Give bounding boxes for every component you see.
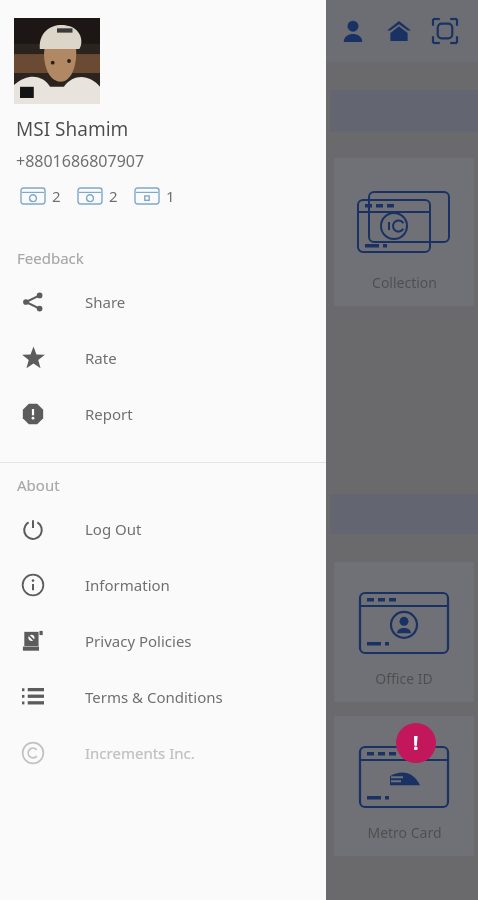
- button[interactable]: Increments Inc.: [0, 725, 326, 781]
- staticText: 2: [109, 186, 118, 206]
- button[interactable]: Collection: [334, 158, 474, 306]
- staticText: Increments Inc.: [85, 743, 195, 763]
- staticText: Information: [85, 575, 170, 595]
- staticText: Report: [85, 404, 133, 424]
- staticText: +8801686807907: [16, 150, 145, 172]
- staticText: Feedback: [17, 248, 84, 268]
- button[interactable]: Log Out: [0, 501, 326, 557]
- staticText: 1: [166, 186, 175, 206]
- button[interactable]: Terms & Conditions: [0, 669, 326, 725]
- staticText: About: [17, 475, 60, 495]
- staticText: Rate: [85, 348, 117, 368]
- staticText: MSI Shamim: [16, 116, 129, 142]
- staticText: Terms & Conditions: [85, 687, 223, 707]
- staticText: Log Out: [85, 519, 142, 539]
- staticText: 2: [52, 186, 61, 206]
- staticText: Metro Card: [367, 823, 442, 842]
- button[interactable]: Privacy Policies: [0, 613, 326, 669]
- staticText: !: [413, 730, 419, 756]
- button[interactable]: Office ID: [334, 562, 474, 702]
- staticText: Privacy Policies: [85, 631, 192, 651]
- button[interactable]: Share: [0, 274, 326, 330]
- button[interactable]: Profile: [330, 8, 376, 54]
- button[interactable]: Rate: [0, 330, 326, 386]
- button[interactable]: Information: [0, 557, 326, 613]
- staticText: Collection: [372, 273, 437, 292]
- button[interactable]: Scan: [422, 8, 468, 54]
- button[interactable]: Metro Card: [334, 716, 474, 856]
- button[interactable]: Report: [0, 386, 326, 442]
- staticText: Office ID: [375, 669, 433, 688]
- button[interactable]: Profile photo: [14, 18, 100, 104]
- staticText: Share: [85, 292, 126, 312]
- button[interactable]: Home: [376, 8, 422, 54]
